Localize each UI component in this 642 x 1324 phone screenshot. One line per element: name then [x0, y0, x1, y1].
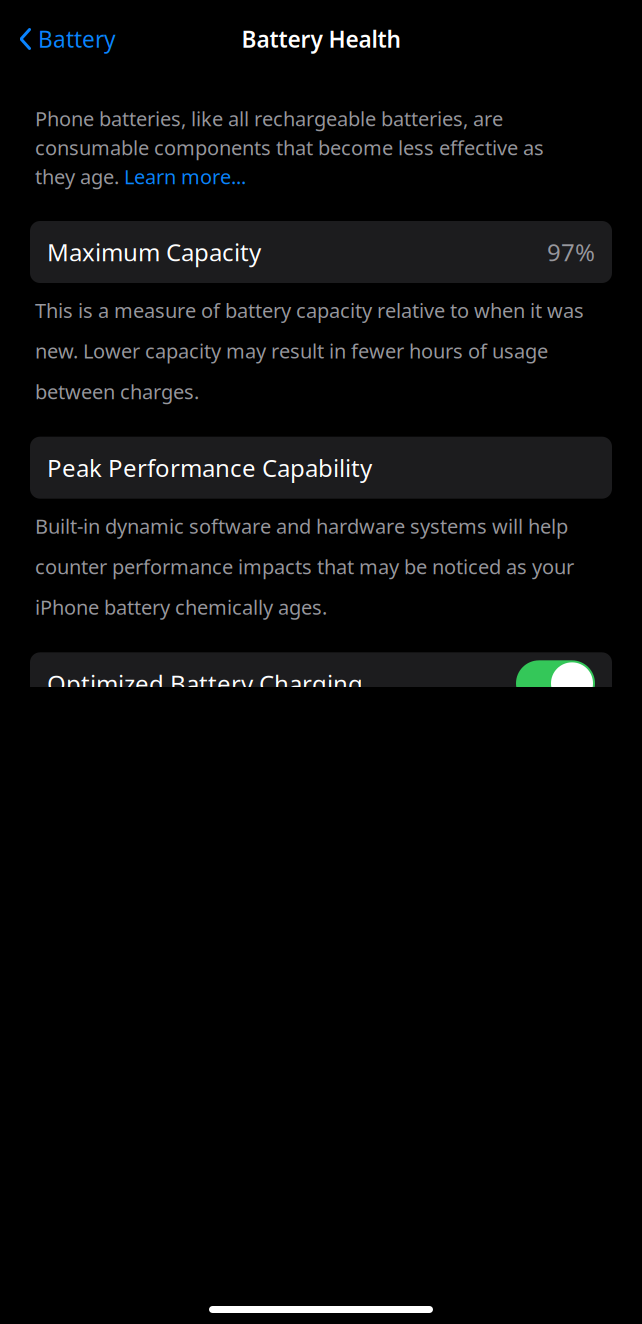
staticText: This is a measure of battery capacity re…	[35, 297, 584, 405]
button[interactable]: Peak Performance Capability	[30, 437, 612, 499]
staticText: Phone batteries, like all rechargeable b…	[35, 105, 503, 132]
button[interactable]: Battery	[13, 16, 122, 62]
staticText: Maximum Capacity	[47, 236, 261, 268]
staticText: Battery	[38, 24, 116, 54]
staticText: Optimized Battery Charging	[47, 667, 363, 699]
staticText: consumable components that become less e…	[35, 134, 544, 161]
button[interactable]: Maximum Capacity	[30, 221, 612, 283]
staticText: Learn more...	[124, 163, 246, 190]
button[interactable]: Learn more...	[124, 163, 246, 190]
staticText: they age.	[35, 163, 124, 190]
staticText: 97%	[547, 236, 595, 268]
button[interactable]: Optimized Battery Charging	[30, 652, 612, 714]
staticText: Built-in dynamic software and hardware s…	[35, 513, 574, 620]
staticText: Peak Performance Capability	[47, 452, 372, 484]
staticText: Battery Health	[241, 24, 400, 54]
